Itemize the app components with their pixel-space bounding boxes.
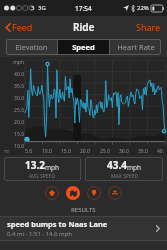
staticText: 30.0 — [2, 95, 24, 102]
staticText: 40. — [157, 148, 165, 155]
staticText: 30.0 — [119, 148, 129, 155]
button[interactable]: Achievements — [87, 186, 101, 200]
staticText: 10.0 — [2, 143, 24, 150]
button[interactable]: Map — [66, 186, 80, 200]
button[interactable]: Segments — [45, 186, 59, 200]
button[interactable]: Heart Rate — [110, 39, 161, 55]
staticText: Elevation — [15, 42, 48, 52]
staticText: 15.0 — [61, 148, 71, 155]
staticText: mph — [45, 163, 60, 172]
button[interactable]: Photos — [108, 186, 122, 200]
button[interactable]: Feed — [0, 18, 38, 36]
button[interactable]: speed bumps to Naas Lane — [0, 217, 167, 240]
staticText: Speed — [72, 42, 95, 52]
staticText: speed bumps to Naas Lane — [7, 219, 108, 229]
staticText: Share — [136, 21, 161, 33]
staticText: 0.4 mi · 1:51 · 14.6 mph — [7, 230, 73, 238]
button[interactable]: Speed — [58, 39, 109, 55]
staticText: 25.0 — [100, 148, 110, 155]
staticText: MAX SPEED — [111, 173, 139, 180]
staticText: 20.0 — [2, 119, 24, 126]
staticText: 13.2 — [25, 158, 45, 172]
staticText: 10.0 — [42, 148, 52, 155]
staticText: 20.0 — [80, 148, 90, 155]
staticText: mph — [127, 163, 142, 172]
staticText: Feed — [12, 21, 33, 33]
staticText: 40.0 — [2, 71, 24, 78]
button[interactable]: Share — [130, 18, 167, 36]
staticText: 17:54 — [75, 4, 92, 13]
staticText: Ride — [73, 20, 95, 34]
staticText: 22% — [137, 4, 149, 12]
staticText: RESULTS — [71, 206, 96, 214]
staticText: AVG SPEED — [29, 173, 56, 180]
staticText: mph — [2, 59, 24, 66]
staticText: 35.0 — [2, 83, 24, 90]
staticText: 3 — [31, 4, 35, 12]
staticText: Heart Rate — [117, 42, 155, 52]
staticText: 43.4 — [107, 158, 127, 172]
staticText: 5.0 — [25, 148, 33, 155]
button[interactable]: 13.2 — [4, 157, 81, 181]
staticText: 15.0 — [2, 131, 24, 138]
staticText: 35.0 — [138, 148, 148, 155]
staticText: 25.0 — [2, 107, 24, 114]
staticText: mi — [4, 148, 10, 154]
button[interactable]: 43.4 — [85, 157, 163, 181]
staticText: 3G — [38, 4, 46, 12]
button[interactable]: Elevation — [6, 39, 57, 55]
